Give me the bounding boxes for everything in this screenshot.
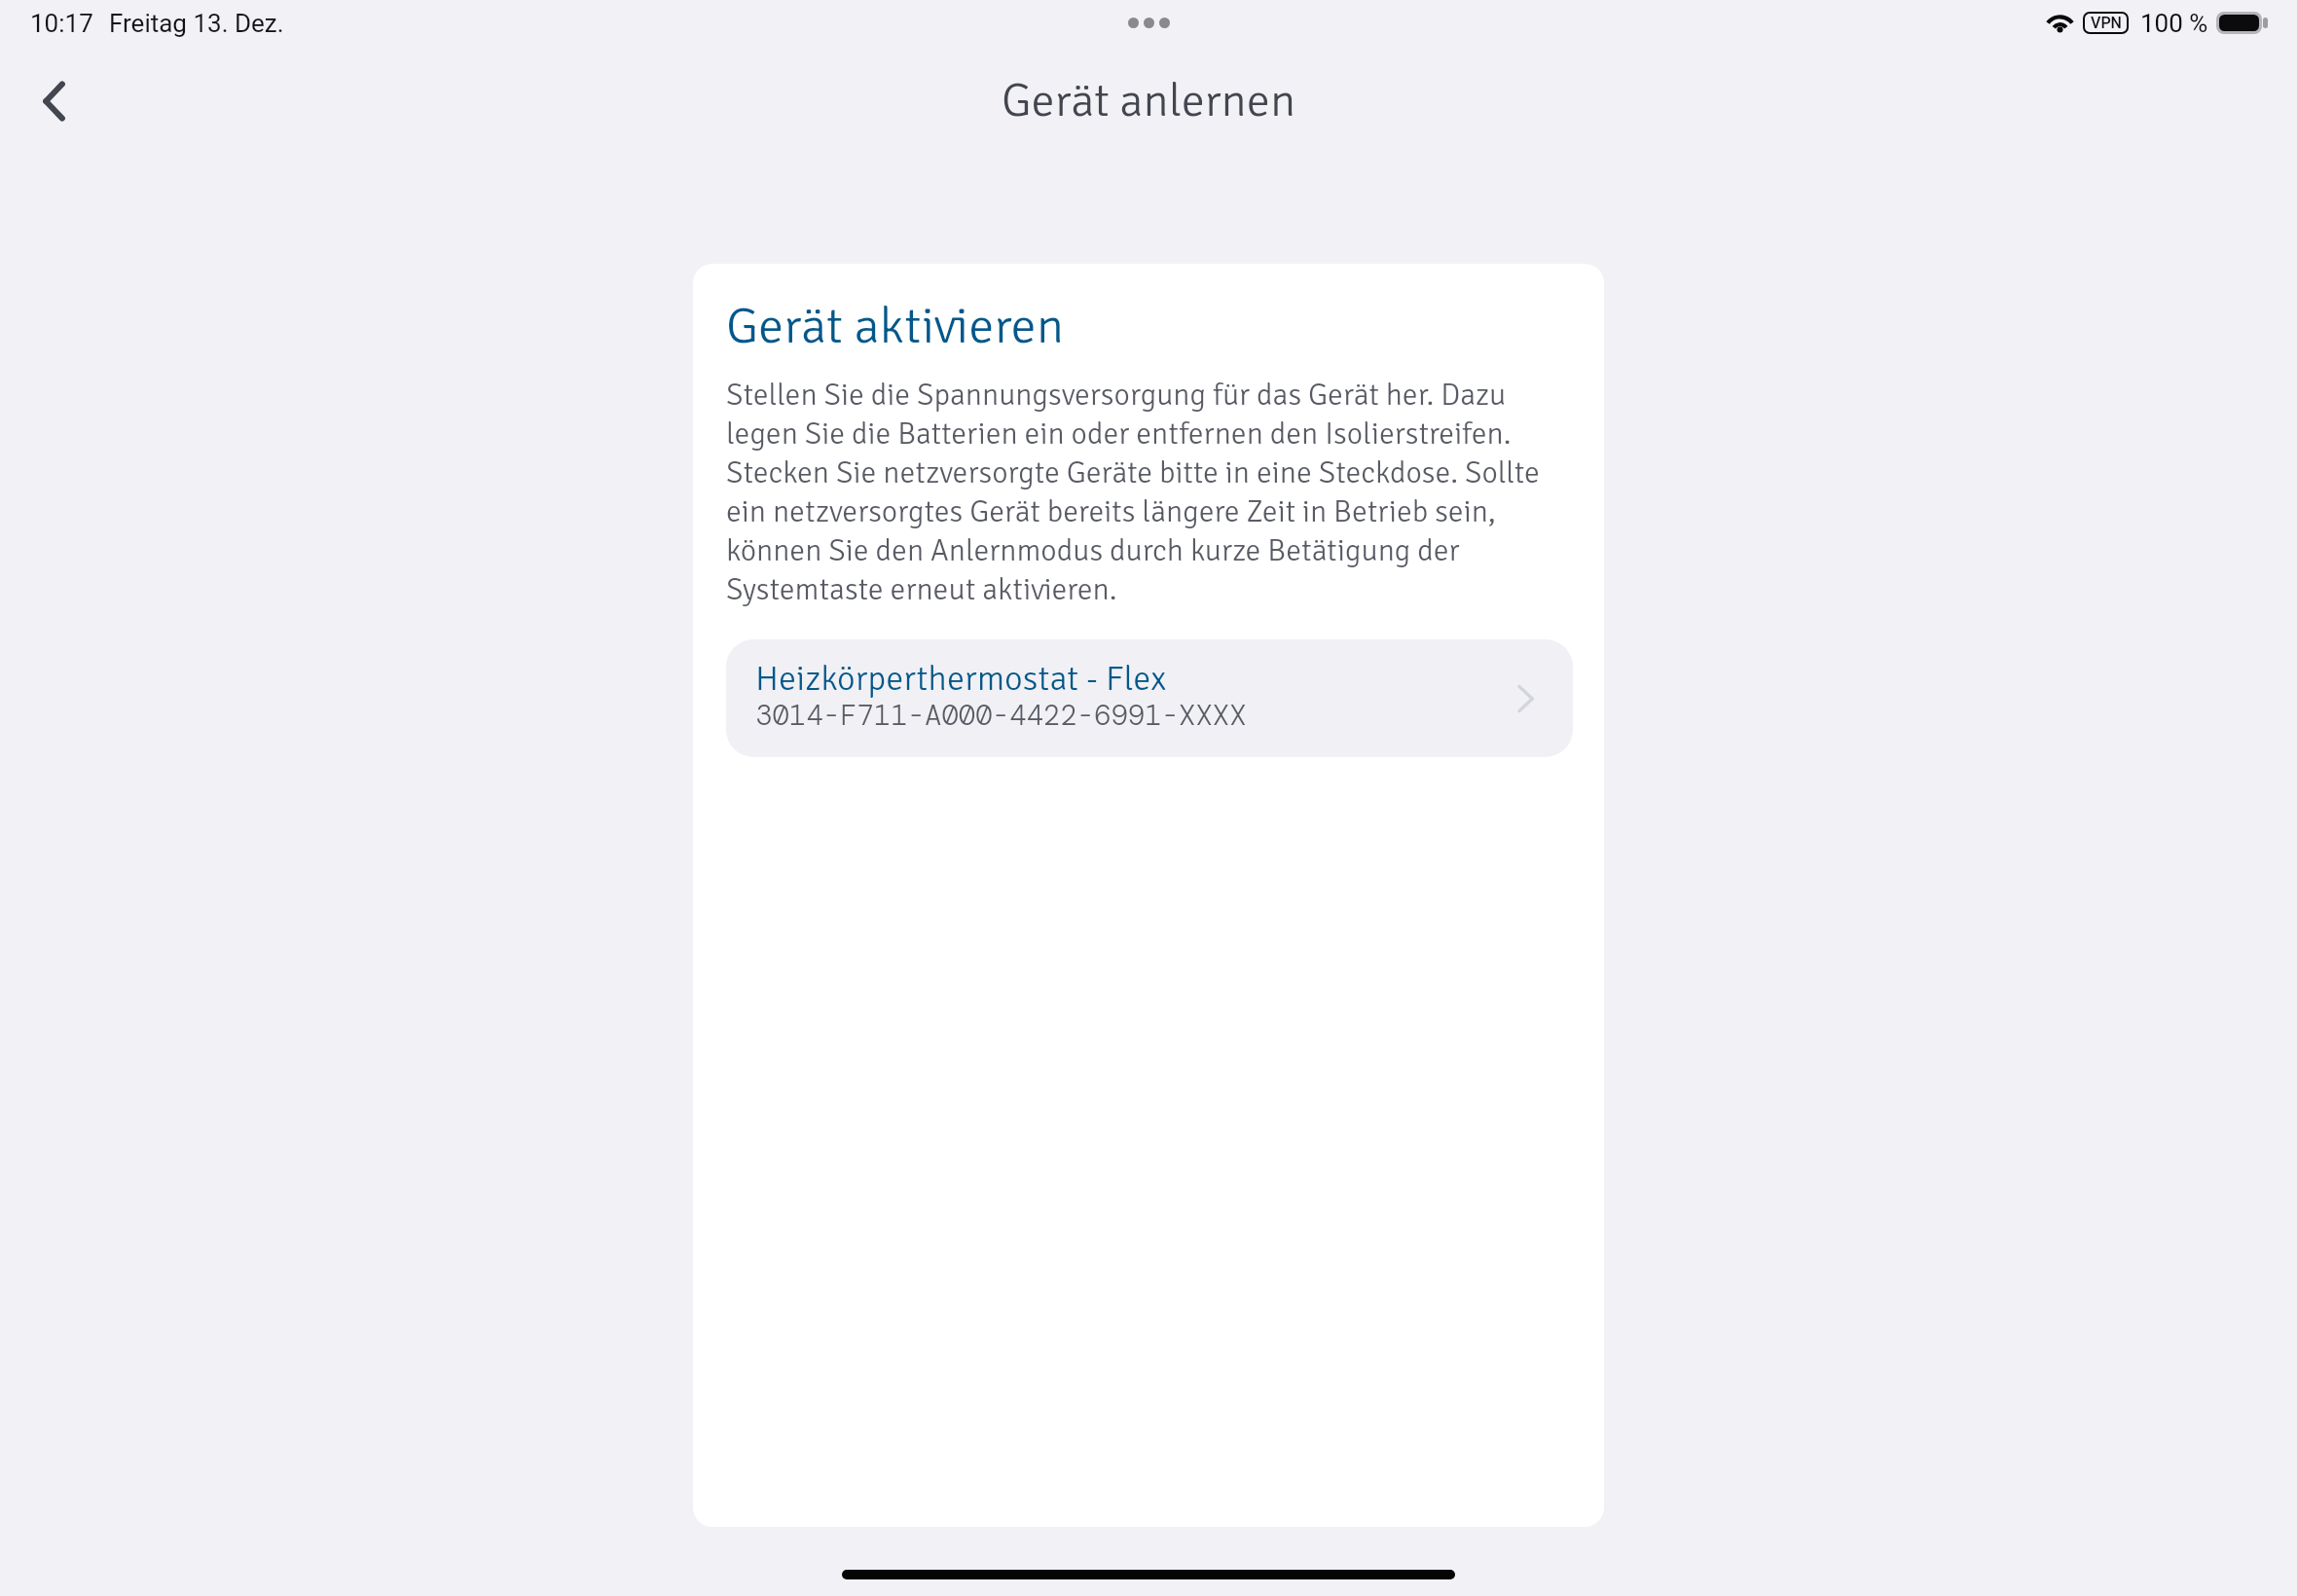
staticText: 10:17 <box>30 9 93 38</box>
staticText: Freitag 13. Dez. <box>109 9 284 38</box>
button[interactable]: Zurück <box>18 64 91 138</box>
staticText: Stellen Sie die Spannungsversorgung für … <box>726 375 1544 608</box>
staticText: VPN <box>2091 14 2122 32</box>
staticText: Gerät anlernen <box>1002 72 1296 129</box>
staticText: Gerät aktivieren <box>726 295 1064 357</box>
staticText: 100 % <box>2140 9 2208 38</box>
staticText: Heizkörperthermostat - Flex <box>755 657 1167 700</box>
staticText: 3014-F711-A000-4422-6991-XXXX <box>755 697 1247 734</box>
button[interactable]: Heizkörperthermostat - Flex <box>726 639 1573 757</box>
